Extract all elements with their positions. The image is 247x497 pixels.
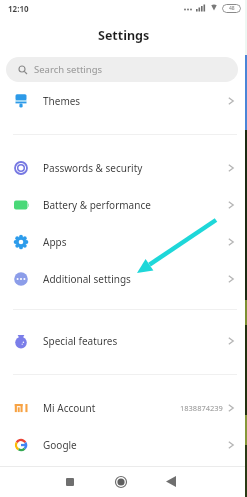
button[interactable]: Battery & performance (0, 186, 247, 223)
button[interactable] (0, 467, 83, 497)
staticText: Google (43, 438, 77, 452)
button[interactable]: Apps (0, 223, 247, 260)
staticText: 48 (229, 5, 235, 12)
staticText: Additional settings (43, 272, 131, 286)
button[interactable] (83, 467, 165, 497)
staticText: Apps (43, 235, 67, 249)
staticText: Settings (98, 27, 150, 44)
button[interactable]: Mi Account (0, 389, 247, 426)
staticText: Battery & performance (43, 198, 151, 212)
staticText: Themes (43, 94, 81, 108)
button[interactable]: Special features (0, 322, 247, 359)
staticText: 12:10 (8, 3, 29, 14)
staticText: 1838874239 (180, 403, 223, 413)
button[interactable]: Search settings (6, 57, 238, 82)
staticText: Special features (43, 334, 118, 348)
button[interactable]: Themes (0, 82, 247, 119)
staticText: Search settings (34, 63, 103, 76)
button[interactable]: Additional settings (0, 260, 247, 297)
button[interactable]: Google (0, 426, 247, 463)
staticText: Mi Account (43, 401, 96, 415)
staticText: Passwords & security (43, 161, 143, 175)
button[interactable] (165, 467, 247, 497)
button[interactable]: Passwords & security (0, 149, 247, 186)
